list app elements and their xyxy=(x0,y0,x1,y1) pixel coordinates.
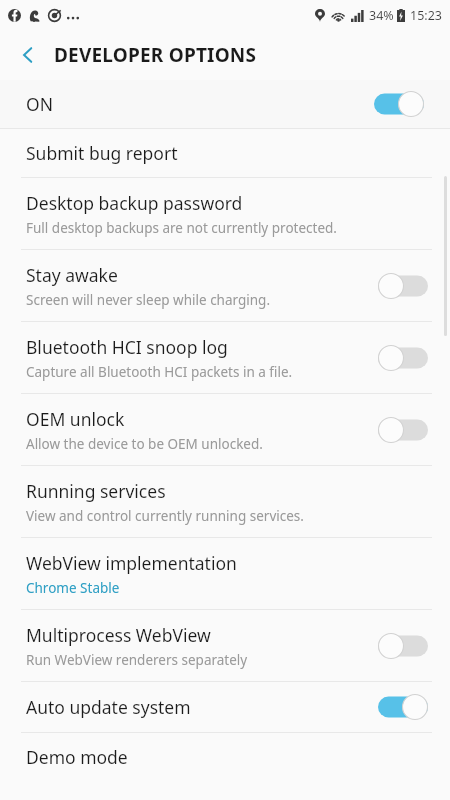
staticText: Screen will never sleep while charging. xyxy=(26,291,271,309)
staticText: Desktop backup password xyxy=(26,191,243,215)
button[interactable]: Toggle off xyxy=(378,633,428,659)
staticText: Full desktop backups are not currently p… xyxy=(26,219,337,237)
staticText: OEM unlock xyxy=(26,407,125,431)
button[interactable]: Auto update system xyxy=(0,682,450,732)
button[interactable]: Desktop backup password xyxy=(0,178,450,249)
staticText: Stay awake xyxy=(26,263,118,287)
staticText: Run WebView renderers separately xyxy=(26,651,248,669)
button[interactable]: Back xyxy=(8,35,48,75)
button[interactable]: ON xyxy=(0,80,450,128)
staticText: 15:23 xyxy=(410,7,442,24)
staticText: WebView implementation xyxy=(26,551,237,575)
staticText: Auto update system xyxy=(26,695,191,719)
button[interactable]: Toggle on xyxy=(374,91,424,117)
button[interactable]: Running services xyxy=(0,466,450,537)
button[interactable]: WebView implementation xyxy=(0,538,450,609)
staticText: Allow the device to be OEM unlocked. xyxy=(26,435,263,453)
button[interactable]: Multiprocess WebView xyxy=(0,610,450,681)
staticText: Submit bug report xyxy=(26,141,178,165)
staticText: Bluetooth HCI snoop log xyxy=(26,335,228,359)
button[interactable]: Submit bug report xyxy=(0,129,450,177)
button[interactable]: Bluetooth HCI snoop log xyxy=(0,322,450,393)
button[interactable]: Demo mode xyxy=(0,733,450,781)
staticText: Capture all Bluetooth HCI packets in a f… xyxy=(26,363,293,381)
staticText: View and control currently running servi… xyxy=(26,507,304,525)
staticText: Running services xyxy=(26,479,166,503)
button[interactable]: OEM unlock xyxy=(0,394,450,465)
button[interactable]: Stay awake xyxy=(0,250,450,321)
staticText: 34% xyxy=(369,7,394,24)
button[interactable]: Toggle off xyxy=(378,345,428,371)
staticText: Chrome Stable xyxy=(26,579,120,597)
staticText: Demo mode xyxy=(26,745,128,769)
staticText: DEVELOPER OPTIONS xyxy=(54,42,257,68)
button[interactable]: Toggle off xyxy=(378,417,428,443)
staticText: ON xyxy=(26,92,53,116)
button[interactable]: Toggle off xyxy=(378,273,428,299)
staticText: Multiprocess WebView xyxy=(26,623,211,647)
button[interactable]: Toggle on xyxy=(378,694,428,720)
